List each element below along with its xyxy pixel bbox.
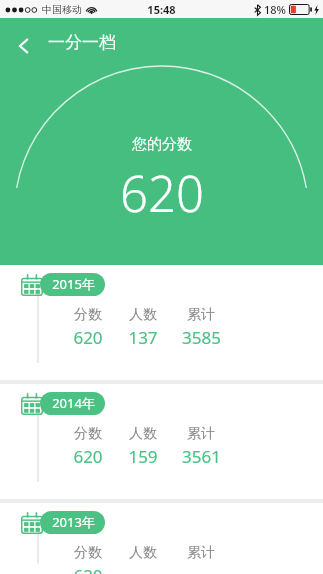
staticText: 分数 — [74, 425, 102, 443]
button[interactable]: Back — [4, 26, 44, 66]
staticText: 一分一档 — [48, 32, 116, 53]
staticText: 15:48 — [147, 2, 176, 17]
staticText: 3585 — [182, 326, 221, 349]
staticText: 2014年 — [52, 394, 95, 412]
staticText: 2013年 — [52, 513, 95, 531]
staticText: 您的分数 — [132, 135, 192, 154]
staticText: 人数 — [129, 425, 157, 443]
staticText: 159 — [128, 445, 158, 468]
staticText: 累计 — [187, 544, 215, 562]
staticText: 620 — [73, 564, 103, 574]
staticText: 137 — [128, 326, 158, 349]
staticText: 人数 — [129, 544, 157, 562]
button[interactable]: 2015年 — [0, 265, 323, 380]
button[interactable]: 2013年 — [0, 503, 323, 574]
staticText: 分数 — [74, 306, 102, 324]
staticText: 累计 — [187, 306, 215, 324]
staticText: 18% — [264, 2, 286, 17]
staticText: 620 — [120, 160, 204, 227]
staticText: 分数 — [74, 544, 102, 562]
staticText: 中国移动 — [42, 3, 82, 16]
staticText: 620 — [73, 445, 103, 468]
staticText: 3561 — [182, 445, 221, 468]
button[interactable]: 2014年 — [0, 384, 323, 499]
staticText: 累计 — [187, 425, 215, 443]
staticText: 人数 — [129, 306, 157, 324]
staticText: 620 — [73, 326, 103, 349]
staticText: 2015年 — [52, 275, 95, 293]
